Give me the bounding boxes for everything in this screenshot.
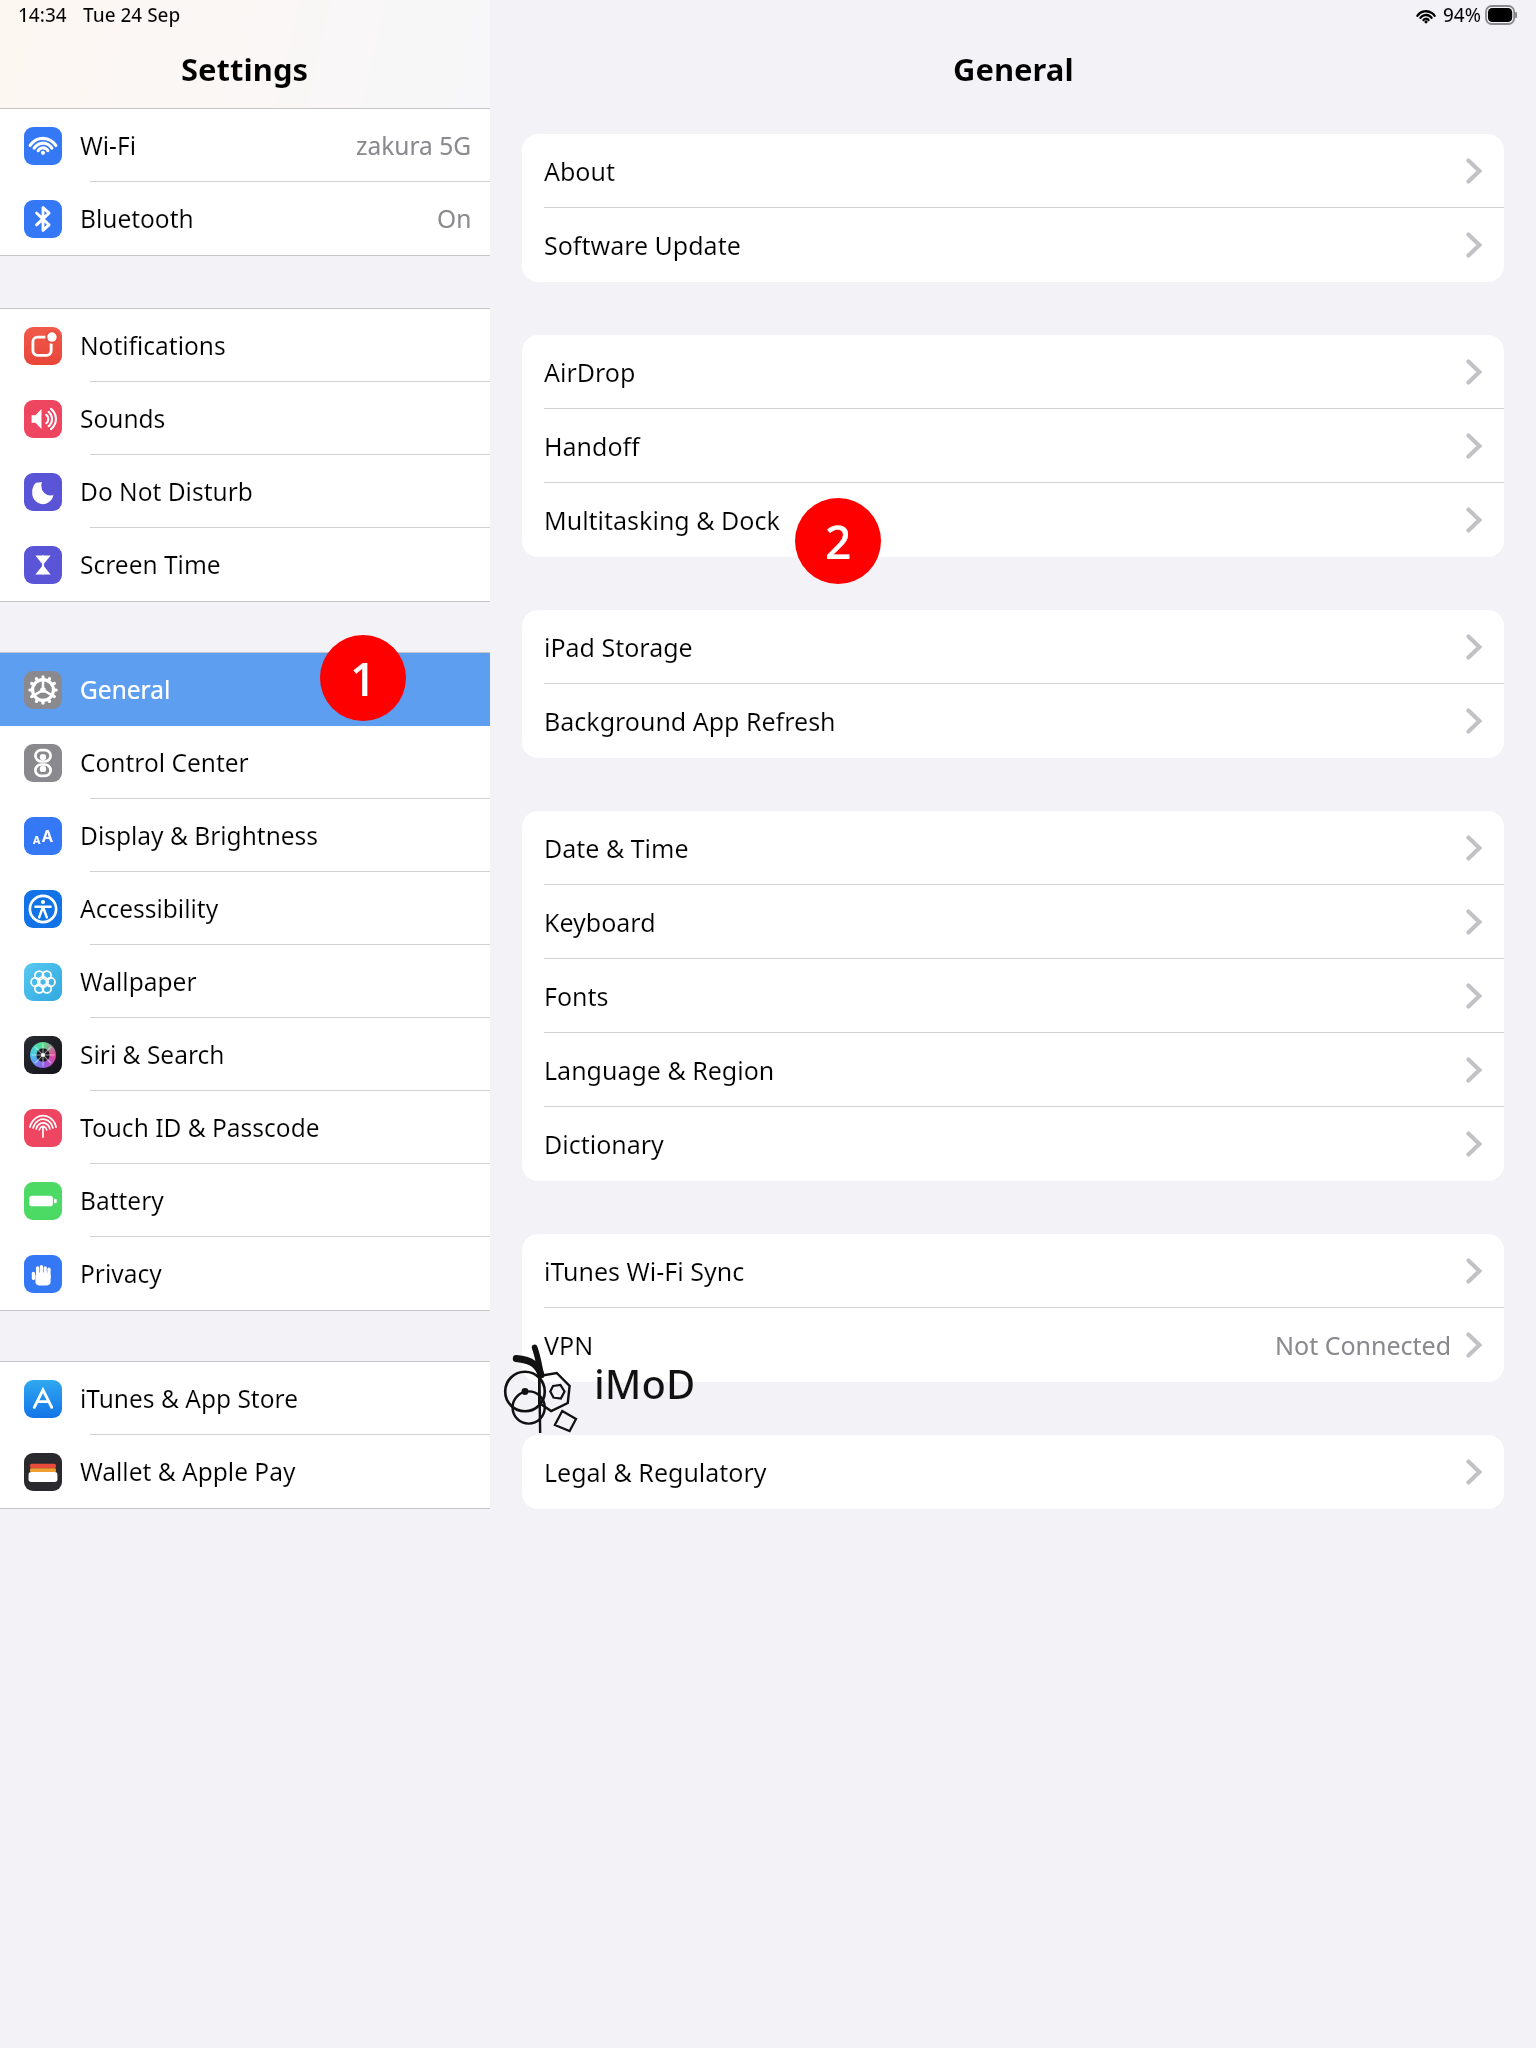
staticText: Handoff (544, 429, 1464, 463)
staticText: Touch ID & Passcode (80, 1111, 490, 1144)
button[interactable]: Handoff (522, 409, 1504, 483)
button[interactable]: General (0, 653, 490, 726)
button[interactable]: iTunes & App Store (0, 1362, 490, 1435)
button[interactable]: Language & Region (522, 1033, 1504, 1107)
staticText: Privacy (80, 1257, 490, 1290)
button[interactable]: Keyboard (522, 885, 1504, 959)
staticText: General (953, 48, 1074, 90)
button[interactable]: Control Center (0, 726, 490, 799)
staticText: iMoD (594, 1356, 696, 1410)
staticText: Legal & Regulatory (544, 1455, 1464, 1489)
staticText: Wi-Fi (80, 129, 356, 162)
button[interactable]: Multitasking & Dock (522, 483, 1504, 557)
staticText: Wallet & Apple Pay (80, 1455, 490, 1488)
staticText: Do Not Disturb (80, 475, 490, 508)
staticText: 1 (350, 647, 377, 710)
staticText: Notifications (80, 329, 490, 362)
staticText: A (33, 832, 41, 847)
button[interactable]: A (0, 799, 490, 872)
staticText: Dictionary (544, 1127, 1464, 1161)
button[interactable]: Screen Time (0, 528, 490, 601)
button[interactable]: Bluetooth (0, 182, 490, 255)
staticText: Fonts (544, 979, 1464, 1013)
staticText: iTunes & App Store (80, 1382, 490, 1415)
button[interactable]: Legal & Regulatory (522, 1435, 1504, 1509)
staticText: VPN (544, 1328, 1275, 1362)
button[interactable]: AirDrop (522, 335, 1504, 409)
button[interactable]: About (522, 134, 1504, 208)
staticText: iTunes Wi-Fi Sync (544, 1254, 1464, 1288)
staticText: On (437, 202, 472, 235)
staticText: Screen Time (80, 548, 490, 581)
button[interactable]: Touch ID & Passcode (0, 1091, 490, 1164)
button[interactable]: Wi-Fi (0, 109, 490, 182)
button[interactable]: Siri & Search (0, 1018, 490, 1091)
staticText: Bluetooth (80, 202, 437, 235)
button[interactable]: Notifications (0, 309, 490, 382)
staticText: iPad Storage (544, 630, 1464, 664)
button[interactable]: Dictionary (522, 1107, 1504, 1181)
button[interactable]: Software Update (522, 208, 1504, 282)
staticText: About (544, 154, 1464, 188)
staticText: General (80, 673, 490, 706)
staticText: Sounds (80, 402, 490, 435)
staticText: Not Connected (1275, 1328, 1452, 1362)
button[interactable]: Background App Refresh (522, 684, 1504, 758)
staticText: Accessibility (80, 892, 490, 925)
staticText: Siri & Search (80, 1038, 490, 1071)
button[interactable]: Wallpaper (0, 945, 490, 1018)
staticText: Battery (80, 1184, 490, 1217)
staticText: Settings (181, 48, 309, 90)
staticText: 94% (1443, 2, 1481, 28)
button[interactable]: Date & Time (522, 811, 1504, 885)
staticText: AirDrop (544, 355, 1464, 389)
button[interactable]: Accessibility (0, 872, 490, 945)
staticText: Tue 24 Sep (83, 2, 181, 28)
staticText: Display & Brightness (80, 819, 490, 852)
button[interactable]: Sounds (0, 382, 490, 455)
button[interactable]: Wallet & Apple Pay (0, 1435, 490, 1508)
button[interactable]: Fonts (522, 959, 1504, 1033)
staticText: Background App Refresh (544, 704, 1464, 738)
staticText: 14:34 (18, 2, 67, 28)
button[interactable]: iTunes Wi-Fi Sync (522, 1234, 1504, 1308)
staticText: Language & Region (544, 1053, 1464, 1087)
staticText: 2 (825, 510, 852, 573)
staticText: Control Center (80, 746, 490, 779)
staticText: Multitasking & Dock (544, 503, 1464, 537)
button[interactable]: Privacy (0, 1237, 490, 1310)
button[interactable]: Do Not Disturb (0, 455, 490, 528)
staticText: Keyboard (544, 905, 1464, 939)
staticText: Software Update (544, 228, 1464, 262)
staticText: zakura 5G (356, 129, 472, 162)
button[interactable]: Battery (0, 1164, 490, 1237)
button[interactable]: VPN (522, 1308, 1504, 1382)
staticText: Wallpaper (80, 965, 490, 998)
staticText: A (42, 825, 53, 847)
staticText: Date & Time (544, 831, 1464, 865)
button[interactable]: iPad Storage (522, 610, 1504, 684)
